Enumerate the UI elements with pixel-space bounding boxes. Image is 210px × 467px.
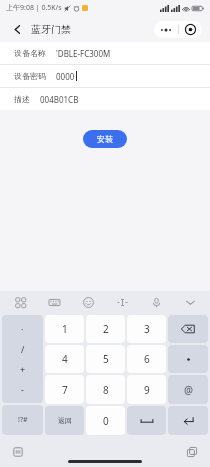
button[interactable]: Emoji <box>78 292 98 312</box>
button[interactable]: 8 <box>86 375 125 404</box>
button[interactable]: 2 <box>86 315 125 343</box>
staticText: 2 <box>103 322 109 336</box>
staticText: 1 <box>62 322 68 336</box>
button[interactable]: Space <box>127 406 166 435</box>
button[interactable]: Keyboard layout <box>44 292 64 312</box>
button[interactable]: Clipboard <box>10 444 26 460</box>
staticText: 'DBLE-FC300M <box>56 48 111 59</box>
staticText: 8 <box>103 383 109 397</box>
button[interactable]: Hide keyboard <box>180 292 200 312</box>
staticText: 7 <box>62 383 68 397</box>
staticText: 返回 <box>58 416 72 425</box>
staticText: !?# <box>18 415 28 425</box>
staticText: 9 <box>144 383 150 397</box>
button[interactable]: 5 <box>86 345 125 373</box>
staticText: @ <box>184 383 193 397</box>
button[interactable]: 安装 <box>83 130 127 148</box>
button[interactable]: 3 <box>127 315 166 343</box>
button[interactable]: 1 <box>45 315 84 343</box>
staticText: 004B01CB <box>40 94 79 105</box>
button[interactable]: Return <box>45 406 84 435</box>
staticText: - <box>21 383 24 395</box>
staticText: 描述 <box>14 94 30 104</box>
staticText: 蓝牙门禁 <box>31 23 71 36</box>
staticText: · <box>21 323 24 335</box>
button[interactable]: Close <box>179 21 202 38</box>
button[interactable]: More options <box>154 21 178 38</box>
staticText: 0000 <box>56 71 75 82</box>
button[interactable]: 9 <box>127 375 166 404</box>
staticText: 5 <box>103 352 109 366</box>
staticText: 设备名称 <box>14 48 46 58</box>
staticText: 4 <box>62 352 68 366</box>
button[interactable]: 设备名称 <box>0 42 210 64</box>
button[interactable]: Enter <box>168 406 208 435</box>
staticText: 0 <box>103 414 109 428</box>
button[interactable]: Apps <box>10 292 30 312</box>
staticText: 安装 <box>97 134 113 144</box>
staticText: 上午9:08 | 0.5K/s <box>6 3 62 13</box>
button[interactable]: 4 <box>45 345 84 373</box>
staticText: 设备密码 <box>14 71 46 81</box>
button[interactable]: Symbols <box>2 315 43 403</box>
staticText: 3 <box>144 322 150 336</box>
button[interactable]: Period <box>168 345 208 373</box>
staticText: 6 <box>144 352 150 366</box>
button[interactable]: Recent apps <box>184 444 200 460</box>
staticText: + <box>20 363 26 375</box>
button[interactable]: @ <box>168 375 208 404</box>
button[interactable]: Delete <box>168 315 208 343</box>
button[interactable]: Voice input <box>146 292 166 312</box>
button[interactable]: 设备密码 <box>0 65 210 87</box>
button[interactable]: 7 <box>45 375 84 404</box>
staticText: / <box>21 343 25 355</box>
button[interactable]: 0 <box>86 406 125 435</box>
button[interactable]: 描述 <box>0 88 210 110</box>
button[interactable]: Back <box>8 20 26 38</box>
button[interactable]: 6 <box>127 345 166 373</box>
button[interactable]: Text editing <box>112 292 132 312</box>
button[interactable]: !?# <box>2 405 43 435</box>
